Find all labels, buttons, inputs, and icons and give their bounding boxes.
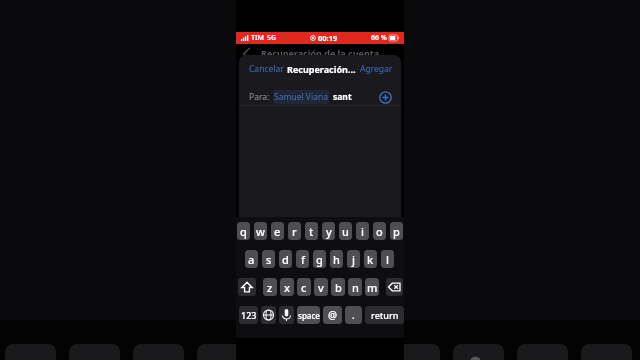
staticText: 66 % <box>371 33 387 43</box>
staticText: 5G <box>267 33 277 43</box>
button[interactable]: m <box>365 278 379 296</box>
staticText: b <box>335 280 342 295</box>
staticText: TIM <box>251 33 265 43</box>
staticText: z <box>267 280 273 295</box>
button[interactable]: c <box>297 278 311 296</box>
button[interactable]: l <box>381 250 394 268</box>
staticText: space <box>298 310 320 321</box>
staticText: t <box>309 224 314 239</box>
staticText: . <box>352 308 355 322</box>
button[interactable]: u <box>339 222 352 240</box>
button[interactable]: j <box>347 250 360 268</box>
button[interactable]: f <box>296 250 309 268</box>
button[interactable]: Shift <box>238 278 256 296</box>
button[interactable]: x <box>280 278 294 296</box>
staticText: Recuperación… <box>287 63 356 75</box>
button[interactable]: Cancelar <box>249 63 284 75</box>
staticText: n <box>352 280 359 295</box>
button[interactable]: o <box>373 222 386 240</box>
staticText: @ <box>328 308 337 322</box>
button[interactable]: Agregar <box>360 63 393 75</box>
button[interactable]: return <box>365 306 404 324</box>
staticText: Para: <box>249 91 270 103</box>
staticText: sant <box>333 91 352 103</box>
staticText: Samuel Viana <box>274 91 328 103</box>
staticText: l <box>386 252 389 267</box>
staticText: a <box>248 252 255 267</box>
button[interactable]: w <box>254 222 267 240</box>
button[interactable]: 123 <box>239 306 258 324</box>
staticText: h <box>333 252 340 267</box>
button[interactable]: d <box>279 250 292 268</box>
button[interactable]: . <box>345 306 362 324</box>
staticText: o <box>376 224 383 239</box>
staticText: w <box>256 224 265 239</box>
button[interactable]: Add contact <box>379 91 392 104</box>
button[interactable]: v <box>314 278 328 296</box>
staticText: e <box>274 224 281 239</box>
staticText: 00:19 <box>318 33 338 43</box>
staticText: d <box>282 252 289 267</box>
staticText: Recuperación de la cuenta <box>236 47 404 59</box>
button[interactable]: p <box>390 222 403 240</box>
staticText: r <box>292 224 297 239</box>
button[interactable]: r <box>288 222 301 240</box>
button[interactable]: s <box>262 250 275 268</box>
button[interactable]: g <box>313 250 326 268</box>
staticText: g <box>316 252 323 267</box>
button[interactable]: k <box>364 250 377 268</box>
button[interactable]: e <box>271 222 284 240</box>
button[interactable]: Backspace <box>386 278 403 296</box>
staticText: s <box>266 252 272 267</box>
button[interactable]: @ <box>323 306 342 324</box>
button[interactable]: space <box>297 306 320 324</box>
staticText: c <box>301 280 307 295</box>
staticText: k <box>367 252 374 267</box>
staticText: y <box>326 224 332 239</box>
button[interactable]: Emoji / language <box>261 306 276 324</box>
staticText: f <box>301 252 305 267</box>
button[interactable]: a <box>245 250 258 268</box>
staticText: v <box>318 280 324 295</box>
button[interactable]: t <box>305 222 318 240</box>
staticText: p <box>393 224 400 239</box>
button[interactable]: q <box>237 222 250 240</box>
button[interactable]: z <box>263 278 277 296</box>
staticText: j <box>352 252 355 267</box>
button[interactable]: Dictation <box>279 306 294 324</box>
staticText: x <box>284 280 290 295</box>
button[interactable]: y <box>322 222 335 240</box>
button[interactable]: n <box>348 278 362 296</box>
button[interactable]: i <box>356 222 369 240</box>
staticText: m <box>367 280 378 295</box>
staticText: 123 <box>241 309 257 321</box>
staticText: i <box>361 224 364 239</box>
button[interactable]: h <box>330 250 343 268</box>
staticText: q <box>240 224 247 239</box>
staticText: u <box>342 224 349 239</box>
button[interactable]: b <box>331 278 345 296</box>
staticText: return <box>371 309 399 321</box>
